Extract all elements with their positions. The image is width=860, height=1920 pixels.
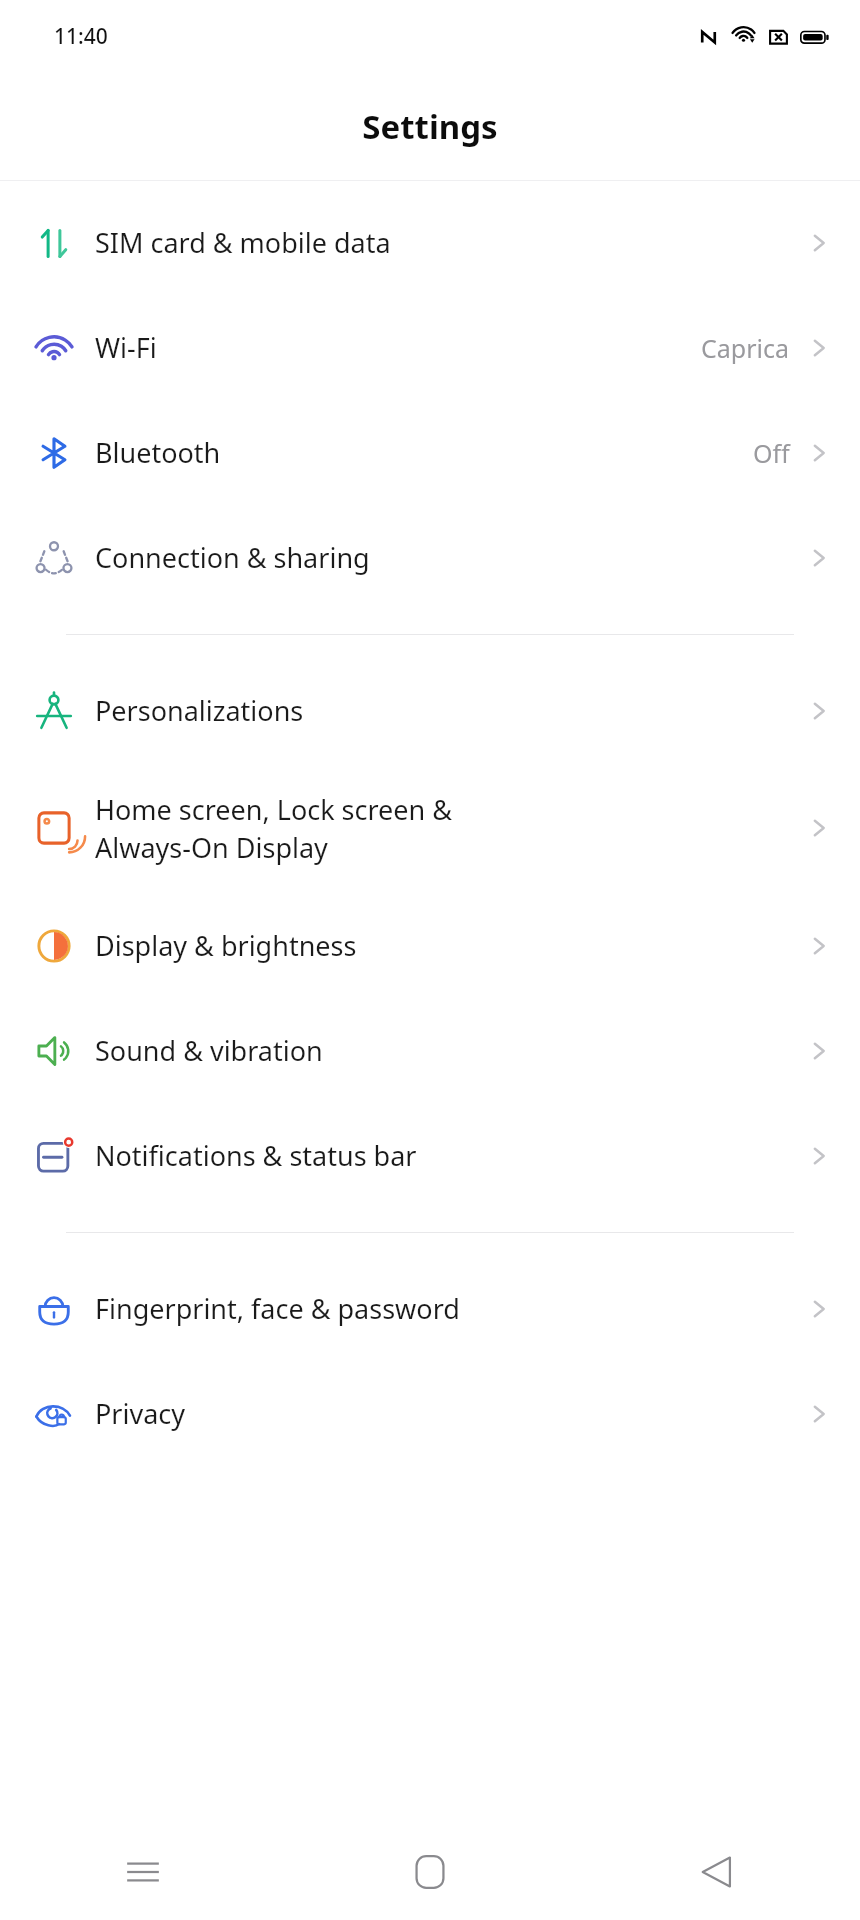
staticText: Connection & sharing [95,539,806,576]
button[interactable]: Sound & vibration [0,998,860,1103]
staticText: Personalizations [95,692,806,729]
staticText: Bluetooth [95,434,753,471]
button[interactable]: Fingerprint, face & password [0,1256,860,1361]
staticText: Home screen, Lock screen & Always-On Dis… [95,791,806,866]
staticText: Display & brightness [95,927,806,964]
button[interactable]: Connection & sharing [0,505,860,610]
button[interactable]: Personalizations [0,658,860,763]
staticText: Wi-Fi [95,329,701,366]
staticText: Caprica [701,331,790,365]
staticText: 11:40 [54,22,108,51]
button[interactable]: Bluetooth [0,400,860,505]
staticText: SIM card & mobile data [95,224,806,261]
button[interactable]: SIM card & mobile data [0,190,860,295]
button[interactable]: Home screen, Lock screen & Always-On Dis… [0,763,860,893]
staticText: Privacy [95,1395,806,1432]
button[interactable]: Privacy [0,1361,860,1466]
staticText: Sound & vibration [95,1032,806,1069]
staticText: Off [753,436,790,470]
staticText: Settings [362,104,498,149]
button[interactable]: Back [573,1824,860,1920]
button[interactable]: Wi-Fi [0,295,860,400]
button[interactable]: Home [286,1824,573,1920]
button[interactable]: Display & brightness [0,893,860,998]
button[interactable]: Recent apps [0,1824,286,1920]
staticText: Fingerprint, face & password [95,1290,806,1327]
staticText: Notifications & status bar [95,1137,806,1174]
button[interactable]: Notifications & status bar [0,1103,860,1208]
